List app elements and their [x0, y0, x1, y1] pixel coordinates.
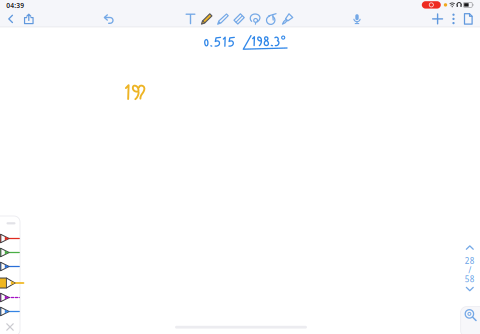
button[interactable]: Back	[4, 12, 18, 26]
button[interactable]: Pages	[461, 12, 475, 26]
button[interactable]: Share	[22, 12, 36, 26]
button[interactable]: Record audio	[350, 12, 364, 26]
button[interactable]: Pencil	[200, 12, 214, 26]
button[interactable]: Undo	[102, 12, 116, 26]
staticText: 28	[465, 255, 475, 266]
staticText: /	[468, 265, 471, 275]
button[interactable]: Shapes	[264, 12, 278, 26]
button[interactable]: Highlighter	[281, 12, 295, 26]
button[interactable]: Previous page	[463, 243, 476, 251]
button[interactable]: Search	[466, 310, 476, 320]
button[interactable]: Pen	[216, 12, 230, 26]
button[interactable]: More options	[447, 12, 459, 26]
button[interactable]: Eraser	[232, 12, 246, 26]
button[interactable]: Add	[431, 12, 445, 26]
button[interactable]: Text	[183, 12, 197, 26]
button[interactable]: Lasso	[248, 12, 262, 26]
button[interactable]: Close palette	[4, 321, 15, 332]
staticText: 04:39	[6, 1, 24, 10]
button[interactable]: Next page	[463, 285, 476, 293]
staticText: 58	[465, 274, 475, 284]
